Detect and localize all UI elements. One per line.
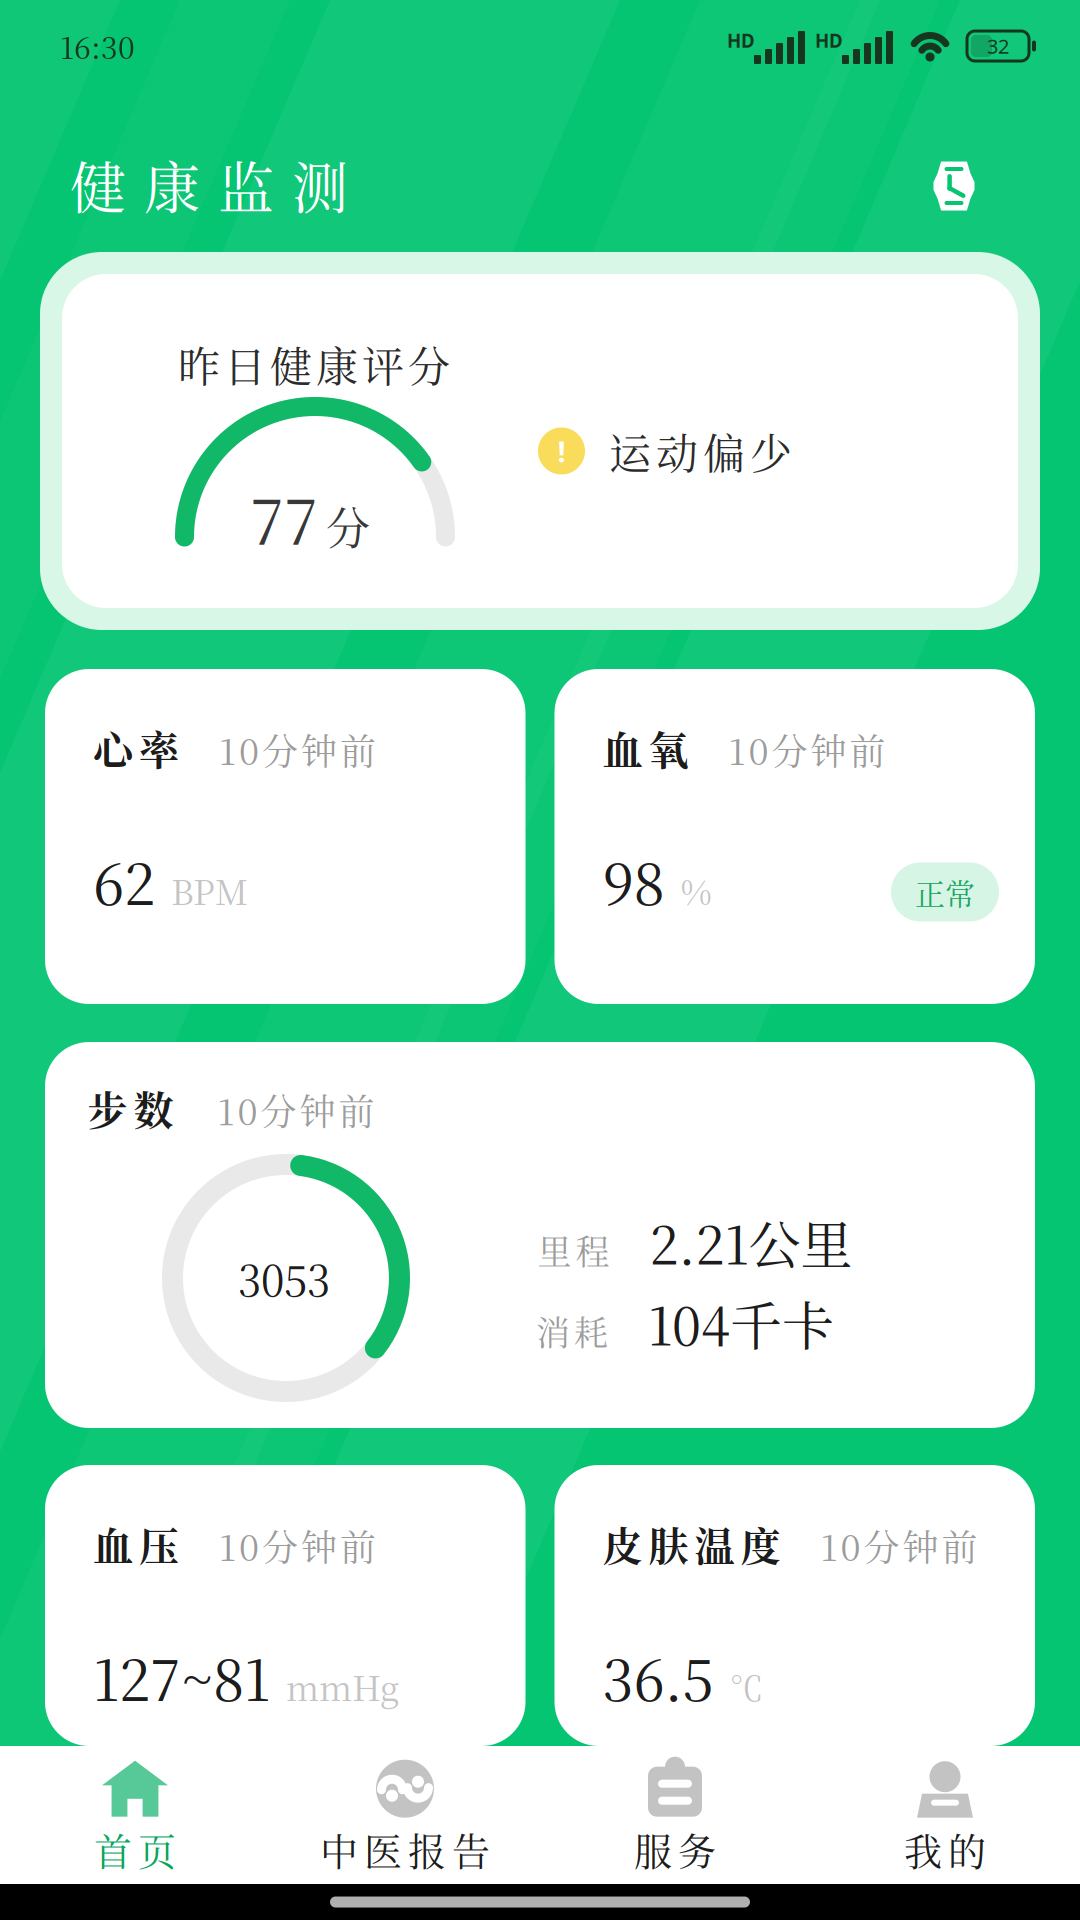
staticText: 98 <box>602 840 664 921</box>
staticText: HD <box>727 28 755 53</box>
staticText: ℃ <box>729 1662 763 1711</box>
staticText: % <box>680 866 711 915</box>
button[interactable]: 我的 <box>810 1742 1080 1888</box>
staticText: 10分钟前 <box>820 1520 977 1571</box>
staticText: 104千卡 <box>648 1286 834 1360</box>
staticText: 10分钟前 <box>728 724 885 775</box>
staticText: 中医报告 <box>320 1822 490 1876</box>
staticText: 运动偏少 <box>609 421 792 481</box>
staticText: 32 <box>987 33 1009 59</box>
staticText: 步数 <box>87 1079 173 1137</box>
staticText: 2.21公里 <box>649 1205 852 1279</box>
staticText: 正常 <box>915 870 975 913</box>
button[interactable]: 服务 <box>540 1742 810 1888</box>
staticText: 62 <box>93 840 155 921</box>
button[interactable]: 中医报告 <box>270 1742 540 1888</box>
button[interactable]: 皮肤温度 <box>554 1465 1035 1746</box>
staticText: 77 <box>250 473 318 563</box>
staticText: 首页 <box>94 1822 176 1876</box>
staticText: ! <box>557 431 565 470</box>
staticText: 我的 <box>904 1822 986 1876</box>
staticText: mmHg <box>286 1662 399 1711</box>
staticText: HD <box>815 28 843 53</box>
staticText: 3053 <box>238 1248 330 1308</box>
button[interactable]: 步数 <box>45 1042 1035 1428</box>
staticText: 10分钟前 <box>219 724 376 775</box>
staticText: 127~81 <box>93 1636 270 1717</box>
staticText: 10分钟前 <box>217 1084 374 1136</box>
staticText: 10分钟前 <box>219 1520 376 1571</box>
staticText: 16:30 <box>60 24 135 67</box>
staticText: BPM <box>171 866 248 915</box>
staticText: 36.5 <box>602 1636 713 1717</box>
staticText: 血压 <box>93 1515 179 1572</box>
button[interactable]: 心率 <box>45 669 525 1004</box>
staticText: 健康监测 <box>70 144 348 224</box>
staticText: 心率 <box>93 719 179 776</box>
staticText: 分 <box>326 494 370 557</box>
button[interactable]: 智能手表 <box>923 137 985 207</box>
staticText: 服务 <box>634 1822 716 1876</box>
staticText: 消耗 <box>536 1306 608 1355</box>
staticText: 里程 <box>537 1225 609 1274</box>
staticText: 皮肤温度 <box>602 1515 780 1572</box>
button[interactable]: 血压 <box>45 1465 525 1746</box>
button[interactable]: 首页 <box>0 1742 270 1888</box>
button[interactable]: 血氧 <box>554 669 1035 1004</box>
staticText: 昨日健康评分 <box>178 334 450 394</box>
staticText: 血氧 <box>602 719 688 776</box>
